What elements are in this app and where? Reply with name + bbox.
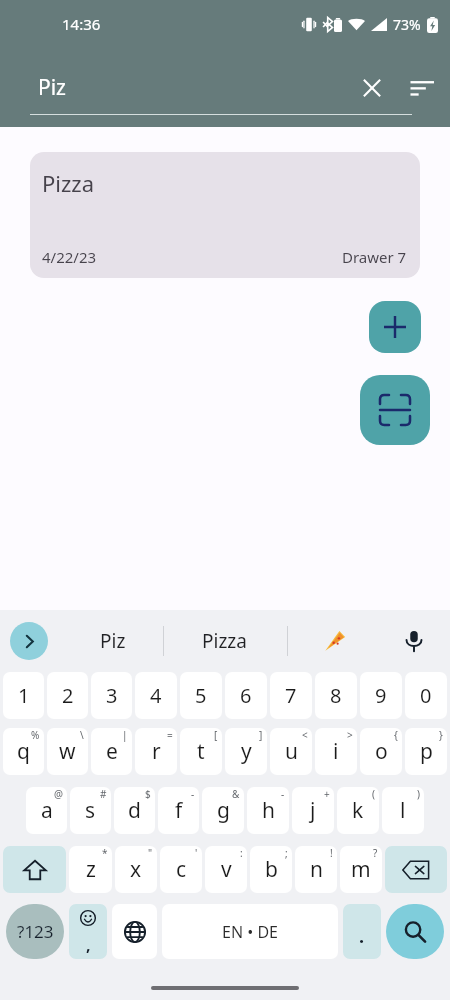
button[interactable]: 2 (47, 672, 88, 719)
button[interactable]: g (202, 787, 244, 834)
staticText: d (128, 796, 141, 825)
button[interactable]: s (70, 787, 111, 834)
button[interactable]: u (270, 728, 312, 775)
button[interactable]: Sort (398, 67, 446, 108)
button[interactable]: e (91, 728, 132, 775)
button[interactable]: 0 (405, 672, 447, 719)
staticText: " (148, 846, 153, 860)
button[interactable]: l (382, 787, 424, 834)
staticText: 6 (240, 682, 252, 709)
button[interactable]: EN • DE (162, 904, 338, 959)
staticText: - (191, 787, 195, 801)
button[interactable]: o (360, 728, 402, 775)
button[interactable]: x (115, 846, 157, 893)
staticText: * (102, 846, 108, 860)
button[interactable]: Search (386, 904, 444, 959)
staticText: { (394, 728, 398, 742)
button[interactable]: Add item (369, 301, 421, 353)
staticText: ; (285, 846, 288, 860)
staticText: ) (417, 787, 420, 801)
staticText: 14:36 (62, 14, 101, 34)
staticText: = (167, 728, 173, 742)
button[interactable]: Pizza emoji (300, 613, 370, 669)
staticText: e (106, 737, 118, 766)
staticText: } (439, 728, 443, 742)
button[interactable]: a (26, 787, 67, 834)
staticText: n (310, 855, 323, 884)
button[interactable]: m (340, 846, 382, 893)
staticText: ' (195, 846, 198, 860)
staticText: & (232, 787, 240, 801)
button[interactable]: d (114, 787, 155, 834)
button[interactable]: v (205, 846, 247, 893)
staticText: ( (372, 787, 375, 801)
staticText: ! (330, 846, 333, 860)
button[interactable]: 9 (360, 672, 402, 719)
button[interactable]: Expand toolbar (10, 622, 48, 660)
button[interactable]: 4 (135, 672, 177, 719)
button[interactable]: 5 (180, 672, 222, 719)
button[interactable]: Pizza (168, 613, 281, 669)
button[interactable]: . (343, 904, 381, 959)
button[interactable]: Voice input (390, 617, 438, 665)
staticText: 0 (420, 682, 432, 709)
button[interactable]: w (47, 728, 88, 775)
staticText: ? (373, 846, 378, 860)
staticText: 1 (18, 682, 30, 709)
button[interactable]: f (158, 787, 199, 834)
button[interactable]: c (160, 846, 202, 893)
staticText: i (333, 737, 339, 766)
button[interactable]: n (295, 846, 337, 893)
staticText: < (302, 728, 308, 742)
button[interactable]: p (405, 728, 447, 775)
button[interactable]: ?123 (6, 904, 64, 959)
button[interactable]: Pizza (30, 152, 420, 278)
staticText: @ (54, 787, 63, 801)
staticText: f (175, 796, 183, 825)
staticText: z (86, 855, 96, 884)
button[interactable]: 6 (225, 672, 267, 719)
staticText: g (217, 796, 230, 825)
button[interactable]: 3 (91, 672, 132, 719)
button[interactable]: Clear search (348, 67, 396, 108)
staticText: Pizza (42, 168, 95, 198)
staticText: \ (80, 728, 84, 742)
button[interactable]: Switch language (112, 904, 157, 959)
staticText: q (17, 737, 30, 766)
staticText: , (86, 934, 91, 956)
button[interactable]: k (337, 787, 379, 834)
staticText: [ (214, 728, 218, 742)
staticText: v (221, 855, 232, 884)
staticText: x (130, 855, 142, 884)
staticText: . (359, 924, 365, 949)
staticText: % (31, 728, 40, 742)
button[interactable]: Piz (62, 613, 164, 669)
staticText: b (265, 855, 278, 884)
button[interactable]: h (247, 787, 289, 834)
button[interactable]: y (225, 728, 267, 775)
staticText: - (281, 787, 285, 801)
button[interactable]: Scan barcode (360, 375, 430, 445)
button[interactable]: t (180, 728, 222, 775)
button[interactable]: q (3, 728, 44, 775)
staticText: k (352, 796, 364, 825)
button[interactable]: b (250, 846, 292, 893)
button[interactable]: r (135, 728, 177, 775)
staticText: 3 (106, 682, 118, 709)
button[interactable]: j (292, 787, 334, 834)
button[interactable]: 1 (3, 672, 44, 719)
staticText: 7 (285, 682, 297, 709)
button[interactable]: z (69, 846, 112, 893)
button[interactable]: Shift (3, 846, 66, 893)
staticText: u (285, 737, 298, 766)
button[interactable]: Backspace (385, 846, 447, 893)
staticText: c (176, 855, 187, 884)
staticText: s (85, 796, 96, 825)
staticText: t (197, 737, 205, 766)
button[interactable]: 8 (315, 672, 357, 719)
button[interactable]: 7 (270, 672, 312, 719)
button[interactable]: i (315, 728, 357, 775)
button[interactable]: Emoji and comma (69, 904, 107, 959)
staticText: 8 (330, 682, 342, 709)
staticText: h (262, 796, 275, 825)
